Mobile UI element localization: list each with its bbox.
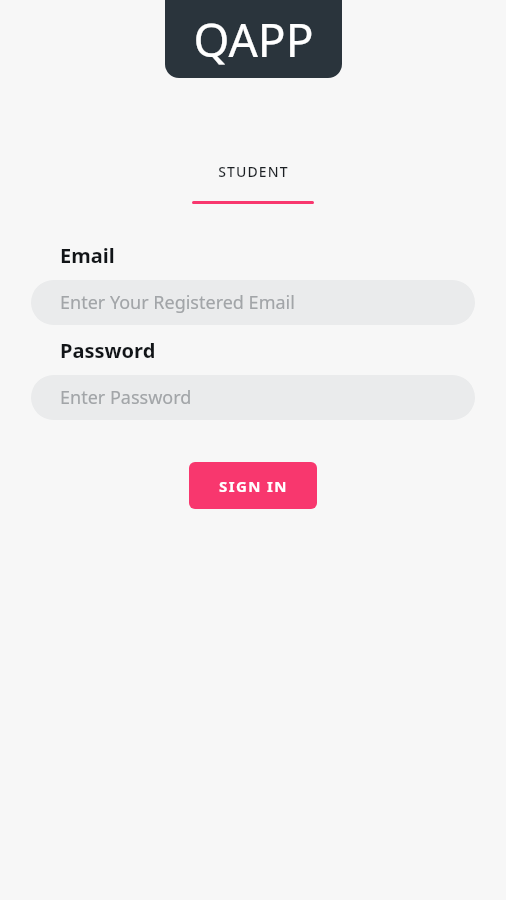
- staticText: Email: [60, 242, 115, 269]
- button[interactable]: STUDENT: [192, 162, 314, 204]
- button[interactable]: Enter Password: [31, 375, 475, 420]
- staticText: Enter Password: [60, 385, 192, 410]
- staticText: STUDENT: [218, 162, 289, 181]
- staticText: Enter Your Registered Email: [60, 290, 295, 315]
- staticText: SIGN IN: [219, 476, 288, 496]
- button[interactable]: Enter Your Registered Email: [31, 280, 475, 325]
- staticText: QAPP: [193, 8, 314, 71]
- button[interactable]: Sign in: [189, 462, 317, 509]
- staticText: Password: [60, 337, 156, 364]
